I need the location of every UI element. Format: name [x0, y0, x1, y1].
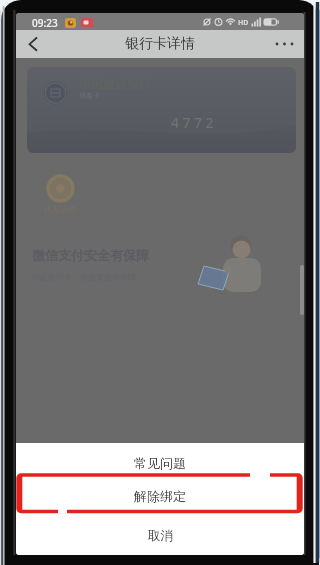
button[interactable]	[22, 32, 46, 56]
button[interactable]: 取消	[16, 513, 304, 555]
staticText: 解除绑定	[134, 488, 186, 504]
button[interactable]: 中国建设银行	[27, 67, 296, 153]
staticText: 微信支付安全有保障	[32, 247, 149, 263]
staticText: 储蓄卡	[79, 91, 100, 100]
button[interactable]	[271, 32, 299, 56]
staticText: 取消	[148, 528, 173, 544]
button[interactable]: 常见问题	[16, 443, 304, 475]
staticText: 银行卡详情	[125, 35, 195, 53]
staticText: HD	[238, 18, 249, 28]
button[interactable]: 解除绑定	[16, 475, 304, 513]
staticText: 4772	[171, 113, 218, 132]
staticText: 09:23	[32, 16, 58, 30]
staticText: 优惠活动	[44, 204, 76, 214]
staticText: 常见问题	[134, 455, 186, 471]
